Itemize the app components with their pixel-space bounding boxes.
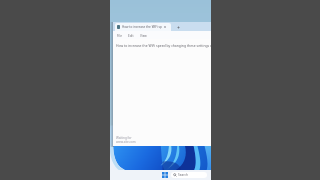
staticText: How to increase the WiFi sp [122,25,162,29]
button[interactable]: View [137,32,150,39]
staticText: Search [178,173,188,177]
button[interactable]: Close tab [163,25,167,29]
staticText: File [117,34,122,37]
staticText: View [140,34,147,37]
button[interactable]: Search [171,172,207,178]
button[interactable]: New tab [175,23,181,31]
button[interactable]: File [114,32,125,39]
staticText: Waiting for [116,136,132,140]
staticText: How to increase the WiFi speed by changi… [116,43,211,48]
button[interactable]: Start [161,171,169,179]
staticText: Edit [128,34,134,37]
staticText: www.site.com [116,140,136,144]
button[interactable]: Edit [125,32,137,39]
button[interactable]: How to increase the WiFi sp [115,23,171,31]
